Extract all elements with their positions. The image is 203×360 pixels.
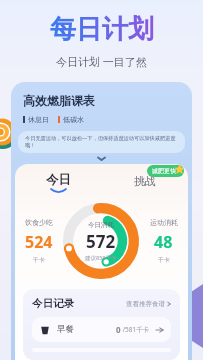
staticText: 572 [86,230,116,253]
staticText: 休息日 [28,115,49,124]
staticText: 早餐 [57,324,74,335]
staticText: 低碳水 [63,115,84,124]
staticText: 48 [154,231,173,253]
staticText: 千卡 [158,256,170,264]
staticText: 查看推荐食谱 [126,300,165,308]
staticText: 0 [116,324,121,335]
staticText: 524 [25,231,53,253]
staticText: 今日无需运动，可以放松一下，但保持适度运动可以加快减肥进度哦！ [25,135,178,149]
staticText: 运动消耗 [150,218,178,227]
staticText: 今日消耗 [88,221,114,229]
other: Add 早餐 [156,327,163,333]
staticText: 今日记录 [32,297,74,310]
staticText: 减肥更快 [152,167,176,175]
button[interactable]: 今日 [15,164,101,197]
button[interactable]: 减肥更快 [147,165,184,177]
staticText: 每日计划 [50,13,154,46]
staticText: 今日计划 一目了然 [56,54,147,69]
button[interactable]: 早餐 [32,317,171,342]
staticText: 千卡 [33,256,45,264]
staticText: 挑战 [134,174,156,188]
staticText: 今日 [46,172,71,188]
staticText: /581千卡 [121,325,150,334]
staticText: 高效燃脂课表 [23,93,95,108]
button[interactable]: 挑战 [101,164,188,196]
staticText: 饮食少吃 [25,218,53,227]
button[interactable]: Expand [96,155,107,162]
button[interactable]: 查看推荐食谱 [126,300,171,308]
staticText: 建议858千卡 [85,254,117,262]
